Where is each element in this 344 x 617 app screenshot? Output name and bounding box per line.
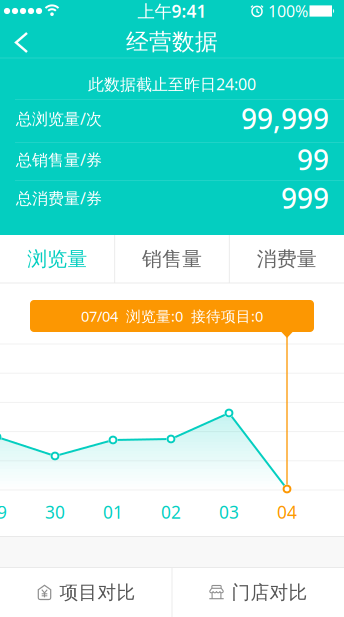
staticText: 总销售量/券 [16,149,102,170]
staticText: 99 [297,141,329,178]
staticText: 总消费量/券 [16,187,102,209]
staticText: 02 [161,500,181,523]
staticText: 门店对比 [231,581,307,604]
staticText: 999 [281,179,329,217]
button[interactable]: 浏览量 [0,235,114,283]
button[interactable]: 销售量 [115,235,229,283]
staticText: 浏览量 [27,247,87,271]
staticText: 30 [45,500,65,523]
staticText: 07/04 浏览量:0 接待项目:0 [81,306,263,326]
staticText: 经营数据 [126,28,218,56]
staticText: 项目对比 [59,581,135,604]
staticText: 总浏览量/次 [16,108,102,129]
staticText: 29 [0,500,7,523]
button[interactable]: Back [0,21,44,64]
staticText: 03 [219,500,239,523]
staticText: 销售量 [142,247,202,271]
staticText: 100% [268,0,308,22]
staticText: 消费量 [257,247,317,271]
staticText: 此数据截止至昨日24:00 [88,73,256,95]
button[interactable]: 门店对比 [172,568,343,617]
staticText: 04 [277,500,297,523]
button[interactable]: 消费量 [230,235,344,283]
staticText: 上午9:41 [137,0,206,22]
staticText: 99,999 [241,100,329,137]
button[interactable]: 项目对比 [0,568,171,617]
staticText: 01 [103,500,123,523]
